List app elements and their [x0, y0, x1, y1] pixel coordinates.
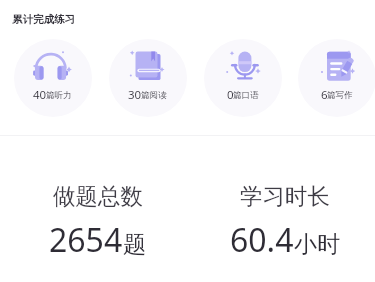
- staticText: 题: [123, 230, 146, 259]
- staticText: 2654: [49, 218, 123, 262]
- button[interactable]: Reading practice: [109, 39, 187, 117]
- button[interactable]: Writing practice: [298, 39, 375, 117]
- button[interactable]: 做题总数: [4, 182, 191, 262]
- button[interactable]: Listening practice: [14, 39, 92, 117]
- staticText: 篇口语: [233, 90, 259, 101]
- staticText: 30: [128, 87, 142, 103]
- staticText: 40: [33, 87, 47, 103]
- button[interactable]: Speaking practice: [204, 39, 282, 117]
- staticText: 篇听力: [46, 90, 72, 101]
- staticText: 学习时长: [240, 182, 330, 210]
- button[interactable]: 学习时长: [191, 182, 375, 262]
- staticText: 6: [321, 87, 328, 103]
- staticText: 60.4: [230, 218, 294, 262]
- staticText: 篇阅读: [141, 90, 167, 101]
- staticText: 小时: [294, 230, 340, 259]
- staticText: 篇写作: [327, 90, 353, 101]
- staticText: 0: [227, 87, 234, 103]
- staticText: 累计完成练习: [12, 13, 75, 26]
- staticText: 做题总数: [53, 182, 143, 210]
